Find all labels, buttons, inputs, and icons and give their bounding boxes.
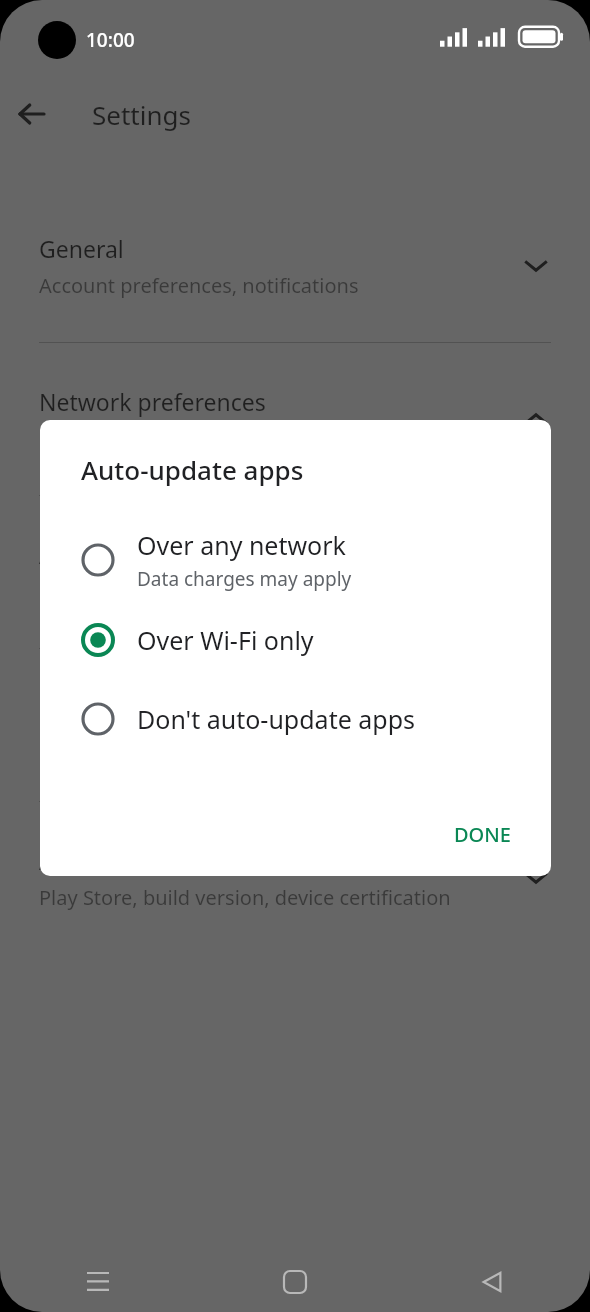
button[interactable]: Network preferences: [0, 343, 590, 495]
button[interactable]: Back: [0, 82, 64, 146]
staticText: Data charges may apply: [137, 566, 352, 592]
button[interactable]: Family: [0, 649, 590, 801]
staticText: DONE: [454, 821, 511, 848]
button[interactable]: Home: [196, 1252, 393, 1312]
staticText: Authentication: [39, 539, 199, 570]
button[interactable]: About: [0, 802, 590, 954]
staticText: About: [39, 845, 105, 876]
staticText: Don't auto-update apps: [137, 702, 416, 736]
staticText: Over any network: [137, 528, 346, 562]
button[interactable]: Over any network: [40, 520, 551, 600]
button[interactable]: DONE: [442, 813, 523, 856]
staticText: Auto-update apps: [81, 452, 304, 487]
staticText: 10:00: [86, 27, 135, 53]
staticText: Data usage for downloads, auto-updates: [39, 425, 422, 452]
staticText: General: [39, 233, 124, 264]
button[interactable]: Over Wi-Fi only: [40, 600, 551, 679]
staticText: Settings: [92, 97, 191, 132]
staticText: Account preferences, notifications: [39, 272, 359, 299]
button[interactable]: Don't auto-update apps: [40, 679, 551, 758]
staticText: Family: [39, 692, 109, 723]
staticText: Over Wi-Fi only: [137, 623, 314, 657]
staticText: Fingerprint, purchase authentication: [39, 578, 384, 605]
staticText: Play Store, build version, device certif…: [39, 884, 451, 911]
button[interactable]: Back: [393, 1252, 590, 1312]
staticText: Parental control, parent guide: [39, 731, 321, 758]
button[interactable]: General: [0, 190, 590, 342]
button[interactable]: Recents: [0, 1252, 196, 1312]
button[interactable]: Authentication: [0, 496, 590, 648]
staticText: Network preferences: [39, 386, 266, 417]
